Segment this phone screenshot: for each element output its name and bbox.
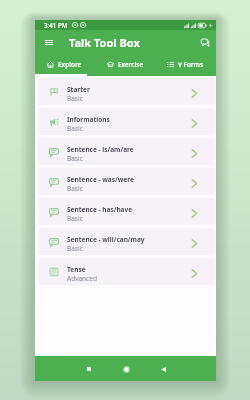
staticText: Tense bbox=[67, 265, 86, 274]
staticText: Basic bbox=[67, 124, 83, 133]
button[interactable]: Informations bbox=[38, 108, 215, 135]
staticText: Sentence - has/have bbox=[67, 205, 133, 214]
button[interactable]: Starter bbox=[38, 78, 215, 105]
staticText: Sentence - is/am/are bbox=[67, 145, 134, 154]
staticText: Basic bbox=[67, 94, 83, 103]
button[interactable]: Tense bbox=[38, 258, 215, 285]
staticText: V Forms bbox=[178, 60, 204, 69]
button[interactable]: Recent apps bbox=[80, 360, 98, 378]
button[interactable]: Sentence - has/have bbox=[38, 198, 215, 225]
button[interactable]: Back bbox=[154, 360, 172, 378]
staticText: Explore bbox=[58, 60, 82, 69]
button[interactable]: Sentence - was/were bbox=[38, 168, 215, 195]
button[interactable]: Exercise bbox=[96, 55, 156, 74]
staticText: Basic bbox=[67, 244, 83, 253]
button[interactable]: Home bbox=[117, 360, 135, 378]
staticText: Basic bbox=[67, 184, 83, 193]
button[interactable]: Open navigation menu bbox=[35, 30, 62, 55]
staticText: Exercise bbox=[118, 60, 144, 69]
staticText: Basic bbox=[67, 154, 83, 163]
staticText: Sentence - will/can/may bbox=[67, 235, 145, 244]
staticText: Basic bbox=[67, 214, 83, 223]
staticText: Informations bbox=[67, 115, 110, 124]
staticText: Talk Tool Box bbox=[69, 35, 140, 50]
staticText: Starter bbox=[67, 85, 90, 94]
staticText: 3:41 PM bbox=[44, 21, 68, 29]
staticText: Sentence - was/were bbox=[67, 175, 134, 184]
staticText: Advanced bbox=[67, 274, 97, 283]
button[interactable]: Sentence - will/can/may bbox=[38, 228, 215, 255]
button[interactable]: V Forms bbox=[156, 55, 216, 74]
button[interactable]: Sentence - is/am/are bbox=[38, 138, 215, 165]
button[interactable]: Explore bbox=[35, 55, 96, 74]
button[interactable]: Forum bbox=[194, 30, 216, 55]
